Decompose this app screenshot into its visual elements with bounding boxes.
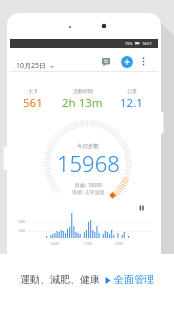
button[interactable]: 運動、減肥、健康 xyxy=(20,273,154,286)
staticText: 10月25日 xyxy=(16,61,47,71)
staticText: 18:00 xyxy=(115,242,124,246)
staticText: 1400 xyxy=(18,229,26,233)
staticText: 12:00 xyxy=(84,242,93,246)
staticText: 15968 xyxy=(57,148,120,178)
staticText: 今日步数 xyxy=(77,143,99,150)
staticText: 全面管理 xyxy=(114,273,154,286)
staticText: 12.1 xyxy=(120,95,143,111)
staticText: 等级: 正常速度 xyxy=(72,189,105,196)
button[interactable] xyxy=(121,56,133,68)
staticText: 大卡 xyxy=(28,88,38,94)
button[interactable] xyxy=(136,202,148,214)
staticText: 2400 xyxy=(18,220,26,224)
staticText: 561 xyxy=(23,95,43,111)
button[interactable]: 10月25日 xyxy=(16,60,51,72)
staticText: 75% xyxy=(125,41,133,46)
staticText: 06:00 xyxy=(51,242,60,246)
staticText: 2h 13m xyxy=(62,95,103,111)
staticText: 活動時間 xyxy=(73,88,93,94)
button[interactable] xyxy=(98,54,114,70)
staticText: 運動、減肥、健康 xyxy=(20,273,100,286)
staticText: 公里 xyxy=(127,88,137,94)
staticText: 目标: 10000 xyxy=(75,182,102,189)
staticText: 16:57 xyxy=(142,41,152,46)
button[interactable] xyxy=(138,54,149,66)
